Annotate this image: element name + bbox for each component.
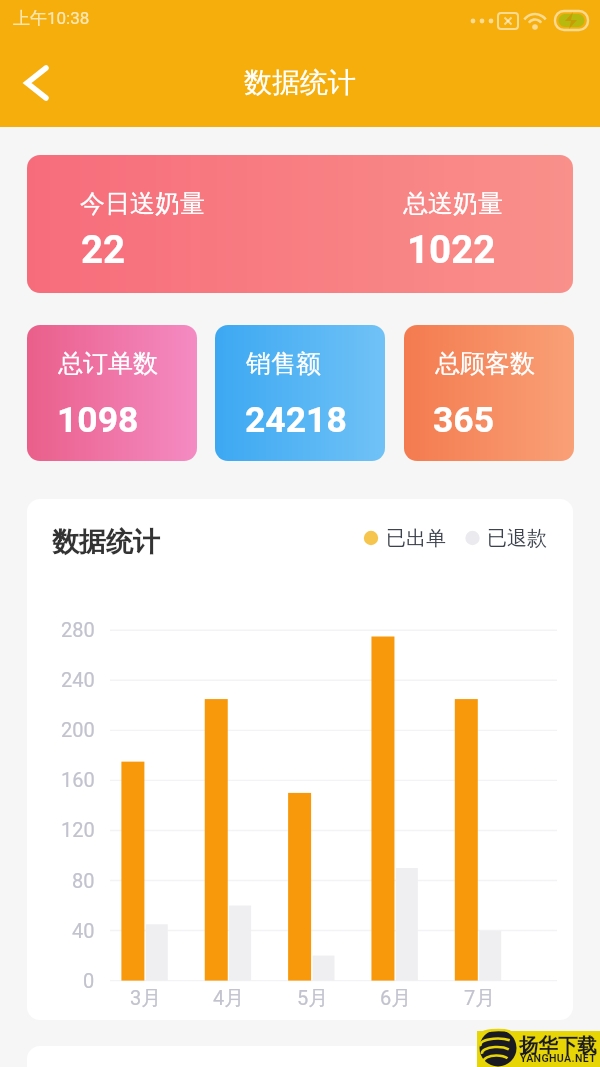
staticText: 今日送奶量 xyxy=(80,188,205,219)
staticText: 120 xyxy=(61,818,95,841)
staticText: 1022 xyxy=(407,227,496,272)
staticText: 280 xyxy=(61,618,95,641)
staticText: 3月 xyxy=(130,986,162,1011)
staticText: 总送奶量 xyxy=(403,188,503,219)
button[interactable] xyxy=(10,55,65,110)
staticText: 22 xyxy=(81,227,126,272)
staticText: 上午10:38 xyxy=(13,8,90,29)
staticText: 已退款 xyxy=(487,526,547,551)
staticText: 200 xyxy=(61,718,95,741)
button[interactable] xyxy=(27,155,573,293)
staticText: 1098 xyxy=(57,399,139,441)
button[interactable] xyxy=(404,325,574,461)
staticText: 销售额 xyxy=(246,348,321,379)
button[interactable] xyxy=(27,325,197,461)
staticText: 总顾客数 xyxy=(435,348,535,379)
staticText: 4月 xyxy=(213,986,245,1011)
staticText: 6月 xyxy=(380,986,412,1011)
staticText: 总订单数 xyxy=(58,348,158,379)
button[interactable] xyxy=(215,325,385,461)
staticText: 80 xyxy=(72,869,95,892)
staticText: 40 xyxy=(72,919,95,942)
staticText: 数据统计 xyxy=(52,525,160,559)
staticText: 7月 xyxy=(464,986,496,1011)
staticText: 0 xyxy=(83,969,95,992)
staticText: 已出单 xyxy=(386,526,446,551)
staticText: 365 xyxy=(433,399,495,441)
staticText: 24218 xyxy=(245,399,347,441)
staticText: 160 xyxy=(61,768,95,791)
staticText: 5月 xyxy=(297,986,329,1011)
staticText: 数据统计 xyxy=(244,65,356,100)
staticText: 扬华下载 xyxy=(519,1033,597,1058)
staticText: 240 xyxy=(61,668,95,691)
staticText: YANGHUA.NET xyxy=(520,1052,597,1064)
